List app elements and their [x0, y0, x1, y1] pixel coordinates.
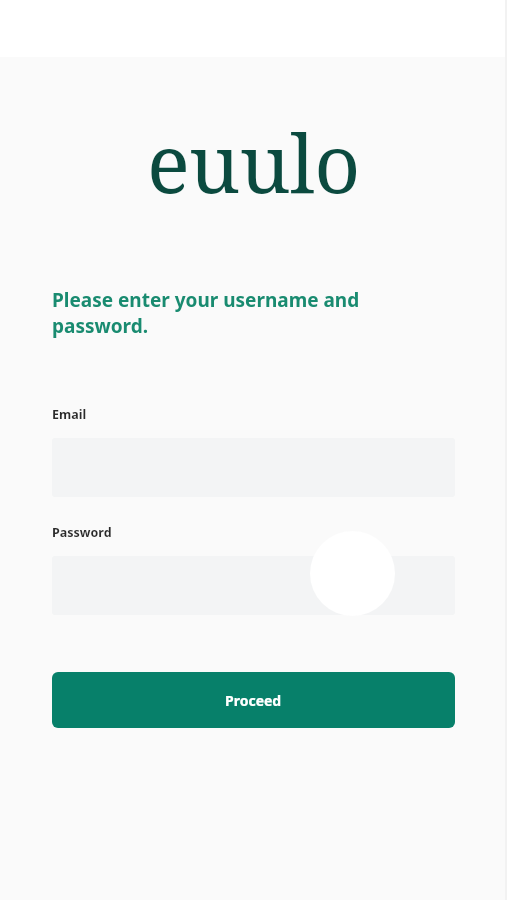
staticText: Password — [52, 524, 112, 541]
button[interactable]: Proceed — [52, 672, 455, 728]
staticText: Please enter your username and password. — [52, 287, 362, 338]
staticText: Email — [52, 406, 87, 423]
button[interactable] — [52, 556, 455, 615]
button[interactable]: Show password — [310, 531, 395, 616]
staticText: euulo — [147, 107, 360, 195]
staticText: Proceed — [225, 691, 282, 710]
